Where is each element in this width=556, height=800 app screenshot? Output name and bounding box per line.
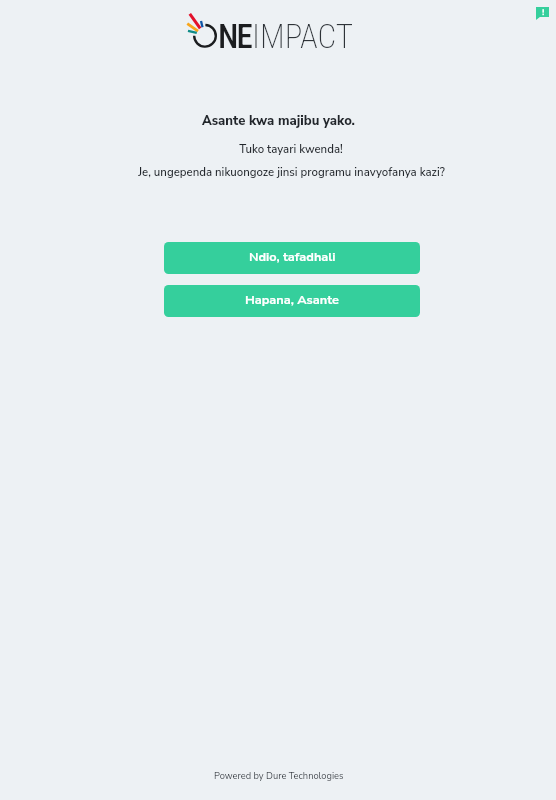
staticText: NE (218, 17, 252, 56)
staticText: IMPACT (252, 17, 354, 56)
button[interactable]: Hapana, Asante (164, 285, 420, 317)
button[interactable]: Ndio, tafadhali (164, 242, 420, 274)
staticText: Asante kwa majibu yako. (202, 112, 355, 130)
staticText: Powered by Dure Technologies (214, 770, 344, 783)
staticText: Je, ungependa nikuongoze jinsi programu … (138, 164, 445, 180)
button[interactable]: Feedback (531, 2, 553, 24)
staticText: Tuko tayari kwenda! (239, 141, 343, 157)
staticText: Ndio, tafadhali (249, 248, 336, 265)
staticText: Hapana, Asante (245, 291, 339, 308)
